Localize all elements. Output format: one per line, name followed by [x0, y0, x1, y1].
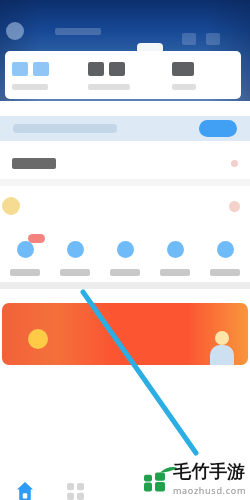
button[interactable]: Categories	[50, 462, 100, 500]
button[interactable]	[2, 303, 248, 365]
staticText: 毛竹手游	[173, 461, 245, 484]
button[interactable]: Messages	[100, 462, 150, 500]
button[interactable]: Home	[0, 462, 50, 500]
button[interactable]	[206, 241, 244, 276]
button[interactable]: Profile	[200, 462, 250, 500]
button[interactable]	[6, 241, 44, 276]
button[interactable]: Cart	[150, 462, 200, 500]
button[interactable]	[156, 241, 194, 276]
button[interactable]	[106, 241, 144, 276]
staticText: maozhusd.com	[173, 484, 247, 496]
button[interactable]	[0, 116, 250, 141]
button[interactable]	[5, 51, 241, 99]
button[interactable]	[56, 241, 94, 276]
